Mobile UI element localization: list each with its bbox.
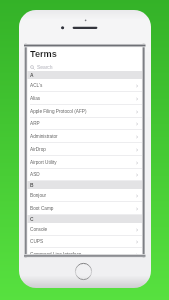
button[interactable]: Apple Filing Protocol (AFP)	[27, 105, 143, 118]
button[interactable]: Command Line Interface	[27, 248, 143, 255]
staticText: ACL's	[30, 83, 43, 88]
button[interactable]: ARP	[27, 117, 143, 130]
button[interactable]: Search	[27, 62, 143, 72]
staticText: Command Line Interface	[30, 252, 82, 255]
staticText: AirDrop	[30, 147, 46, 152]
button[interactable]: ASD	[27, 168, 143, 181]
button[interactable]: Alias	[27, 92, 143, 105]
button[interactable]: AirDrop	[27, 143, 143, 156]
staticText: Bonjour	[30, 193, 47, 198]
staticText: A	[30, 73, 34, 78]
staticText: Terms	[30, 49, 57, 59]
button[interactable]: ACL's	[27, 79, 143, 92]
button[interactable]: Console	[27, 223, 143, 236]
staticText: Console	[30, 227, 48, 232]
staticText: Administrator	[30, 134, 58, 139]
staticText: CUPS	[30, 239, 44, 244]
other: Home	[74, 262, 93, 281]
staticText: ARP	[30, 121, 40, 126]
button[interactable]: Airport Utility	[27, 156, 143, 169]
staticText: Apple Filing Protocol (AFP)	[30, 109, 87, 114]
staticText: Airport Utility	[30, 160, 57, 165]
staticText: Search	[37, 65, 53, 70]
button[interactable]: Boot Camp	[27, 202, 143, 215]
staticText: B	[30, 183, 34, 188]
staticText: C	[30, 217, 34, 222]
staticText: Boot Camp	[30, 206, 54, 211]
staticText: ASD	[30, 172, 40, 177]
staticText: Alias	[30, 96, 41, 101]
button[interactable]: Bonjour	[27, 189, 143, 202]
button[interactable]: Administrator	[27, 130, 143, 143]
button[interactable]: CUPS	[27, 235, 143, 248]
